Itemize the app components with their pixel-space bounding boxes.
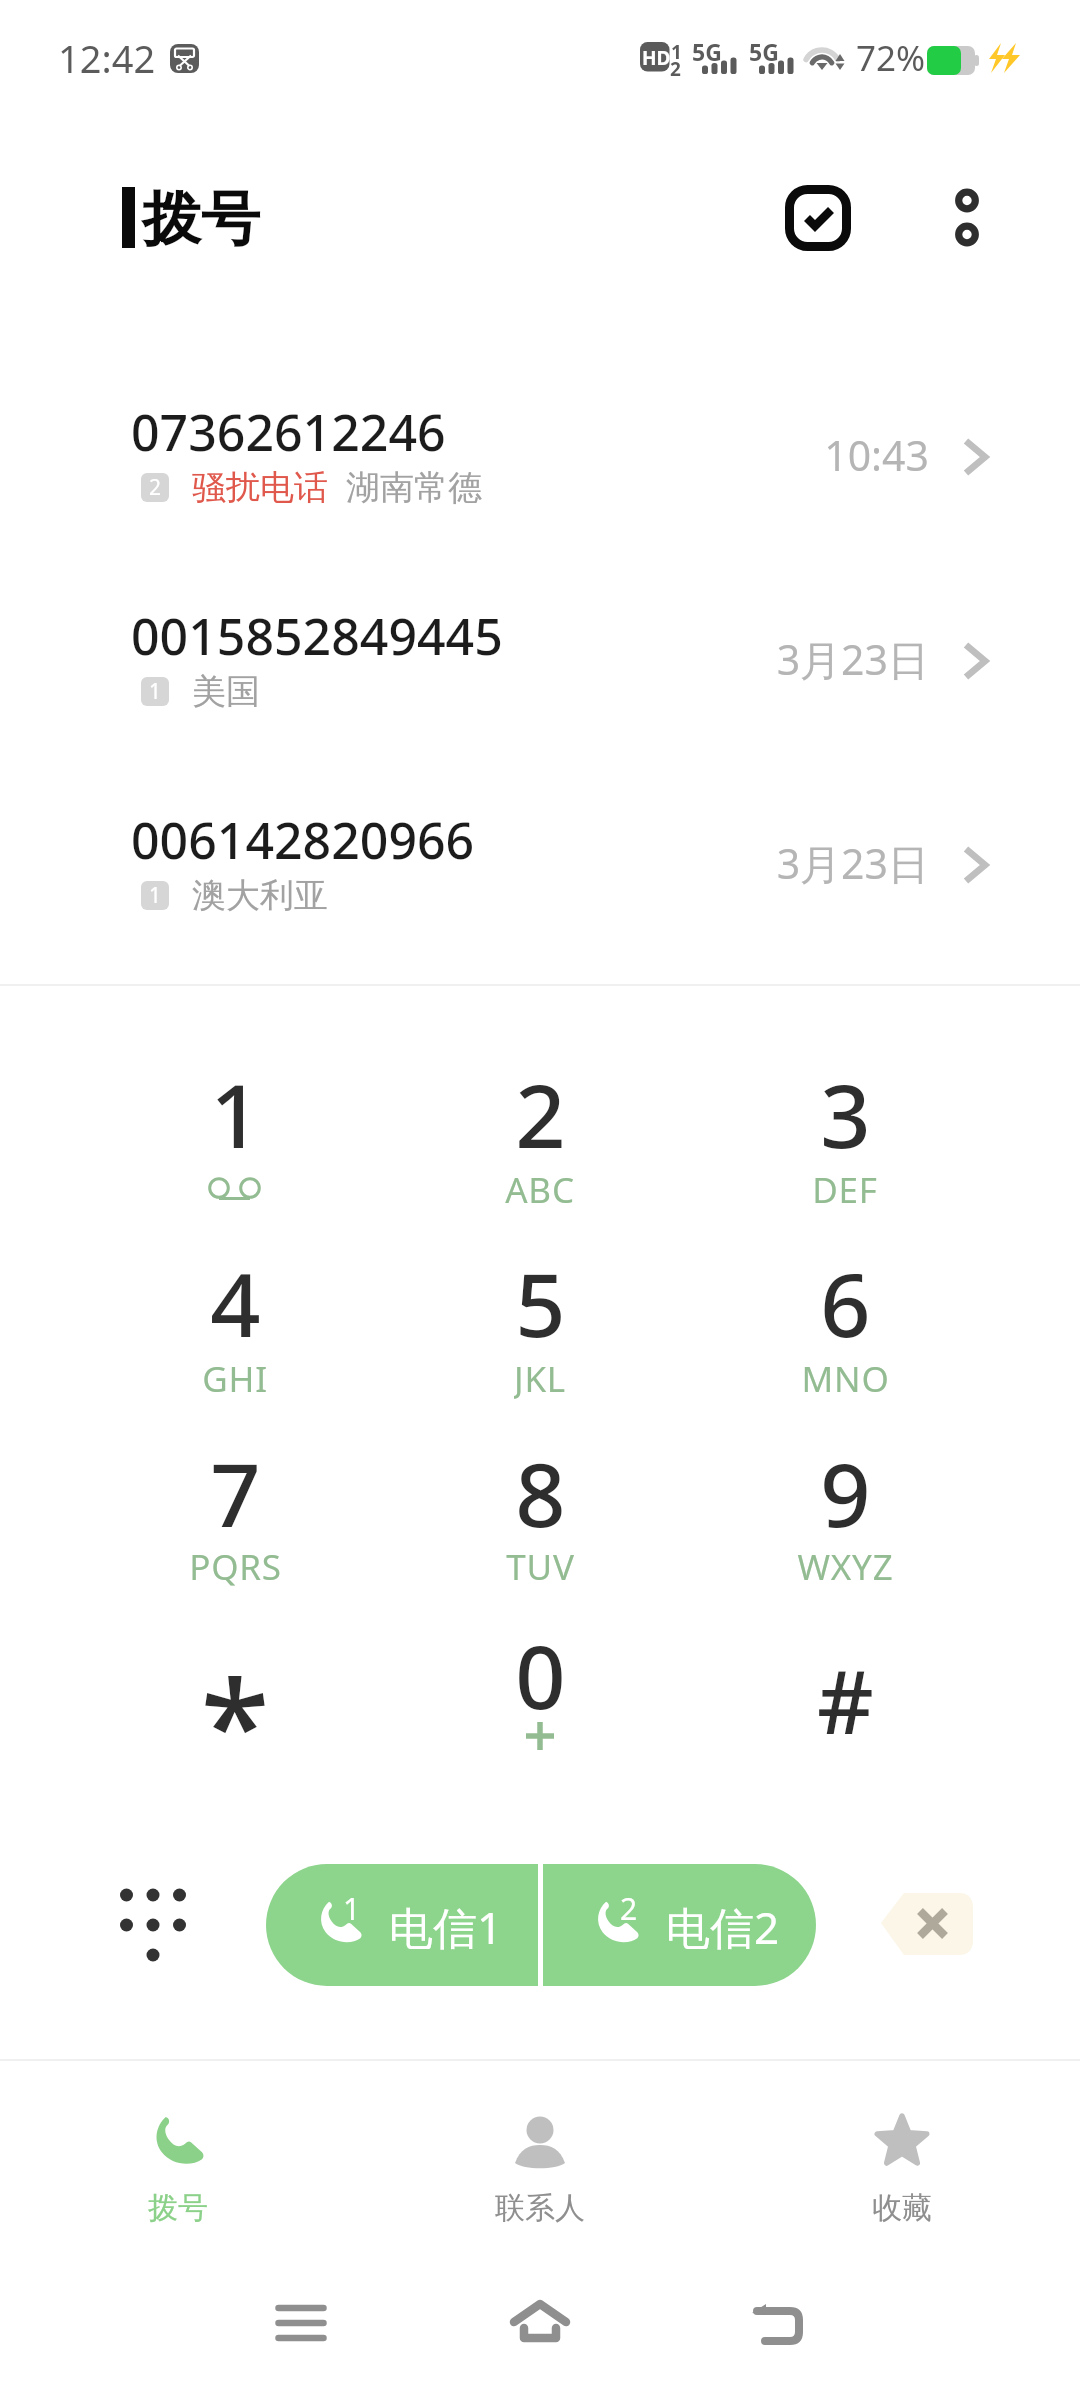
button[interactable]: More options xyxy=(905,160,1029,284)
button[interactable] xyxy=(85,1242,385,1412)
staticText: 3月23日 xyxy=(776,835,929,891)
staticText: 12:42 xyxy=(58,32,156,84)
staticText: 联系人 xyxy=(495,2189,585,2227)
staticText: GHI xyxy=(202,1355,268,1401)
staticText: 07362612246 xyxy=(131,398,446,466)
staticText: 5G xyxy=(692,36,722,67)
button[interactable] xyxy=(390,1053,690,1223)
button[interactable]: 联系人 xyxy=(390,2080,690,2250)
button[interactable]: 2 xyxy=(543,1864,816,1986)
staticText: 8 xyxy=(515,1433,566,1543)
button[interactable] xyxy=(85,1614,385,1784)
button[interactable]: Delete xyxy=(862,1868,992,1978)
staticText: # xyxy=(817,1640,874,1748)
staticText: 电信1 xyxy=(389,1897,503,1957)
button[interactable] xyxy=(695,1242,995,1412)
button[interactable] xyxy=(695,1614,995,1784)
staticText: 2 xyxy=(515,1054,566,1164)
button[interactable]: 07362612246 xyxy=(0,352,1080,556)
staticText: 1 xyxy=(343,1888,361,1929)
staticText: WXYZ xyxy=(797,1543,894,1589)
staticText: 拨号 xyxy=(142,182,260,256)
staticText: 6 xyxy=(820,1243,871,1353)
staticText: 拨号 xyxy=(148,2189,208,2227)
staticText: TUV xyxy=(506,1543,575,1589)
button[interactable] xyxy=(695,1053,995,1223)
staticText: 1 xyxy=(210,1054,261,1164)
staticText: 9 xyxy=(820,1433,871,1543)
button[interactable]: 0015852849445 xyxy=(0,556,1080,760)
staticText: 3月23日 xyxy=(776,631,929,687)
staticText: 2 xyxy=(149,473,162,502)
button[interactable] xyxy=(390,1614,690,1784)
button[interactable]: Keypad options xyxy=(83,1855,223,1995)
staticText: 7 xyxy=(210,1433,261,1543)
staticText: 5 xyxy=(515,1243,566,1353)
button[interactable]: 拨号 xyxy=(28,2080,328,2250)
button[interactable] xyxy=(85,1053,385,1223)
staticText: 0015852849445 xyxy=(131,602,503,670)
staticText: 2 xyxy=(670,56,681,82)
staticText: HD xyxy=(642,45,671,71)
staticText: 72% xyxy=(856,34,926,82)
button[interactable]: Select calls xyxy=(756,156,880,280)
staticText: 美国 xyxy=(192,670,260,713)
staticText: 5G xyxy=(749,36,779,67)
button[interactable]: 1 xyxy=(266,1864,541,1986)
staticText: 006142820966 xyxy=(131,806,475,874)
staticText: MNO xyxy=(801,1355,890,1401)
staticText: DEF xyxy=(812,1166,878,1212)
staticText: 2 xyxy=(620,1888,638,1929)
staticText: 1 xyxy=(149,677,162,706)
staticText: 湖南常德 xyxy=(346,466,482,509)
staticText: PQRS xyxy=(189,1543,282,1589)
staticText: 骚扰电话 xyxy=(192,466,328,509)
button[interactable] xyxy=(695,1432,995,1602)
staticText: 10:43 xyxy=(824,427,929,483)
button[interactable]: Back xyxy=(717,2262,839,2384)
staticText: JKL xyxy=(514,1355,566,1401)
button[interactable] xyxy=(390,1432,690,1602)
button[interactable]: 收藏 xyxy=(752,2080,1052,2250)
button[interactable]: Recents xyxy=(240,2262,362,2384)
button[interactable]: 006142820966 xyxy=(0,760,1080,964)
staticText: 澳大利亚 xyxy=(192,874,328,917)
button[interactable] xyxy=(85,1432,385,1602)
staticText: 电信2 xyxy=(666,1897,780,1957)
staticText: 3 xyxy=(820,1054,871,1164)
staticText: 4 xyxy=(210,1243,261,1353)
staticText: 1 xyxy=(149,881,162,910)
staticText: ABC xyxy=(505,1166,575,1212)
staticText: 收藏 xyxy=(872,2189,932,2227)
button[interactable] xyxy=(390,1242,690,1412)
staticText: 1 xyxy=(671,39,682,65)
staticText: * xyxy=(200,1637,270,1783)
staticText: 0 xyxy=(515,1615,566,1725)
button[interactable]: Home xyxy=(479,2262,601,2384)
